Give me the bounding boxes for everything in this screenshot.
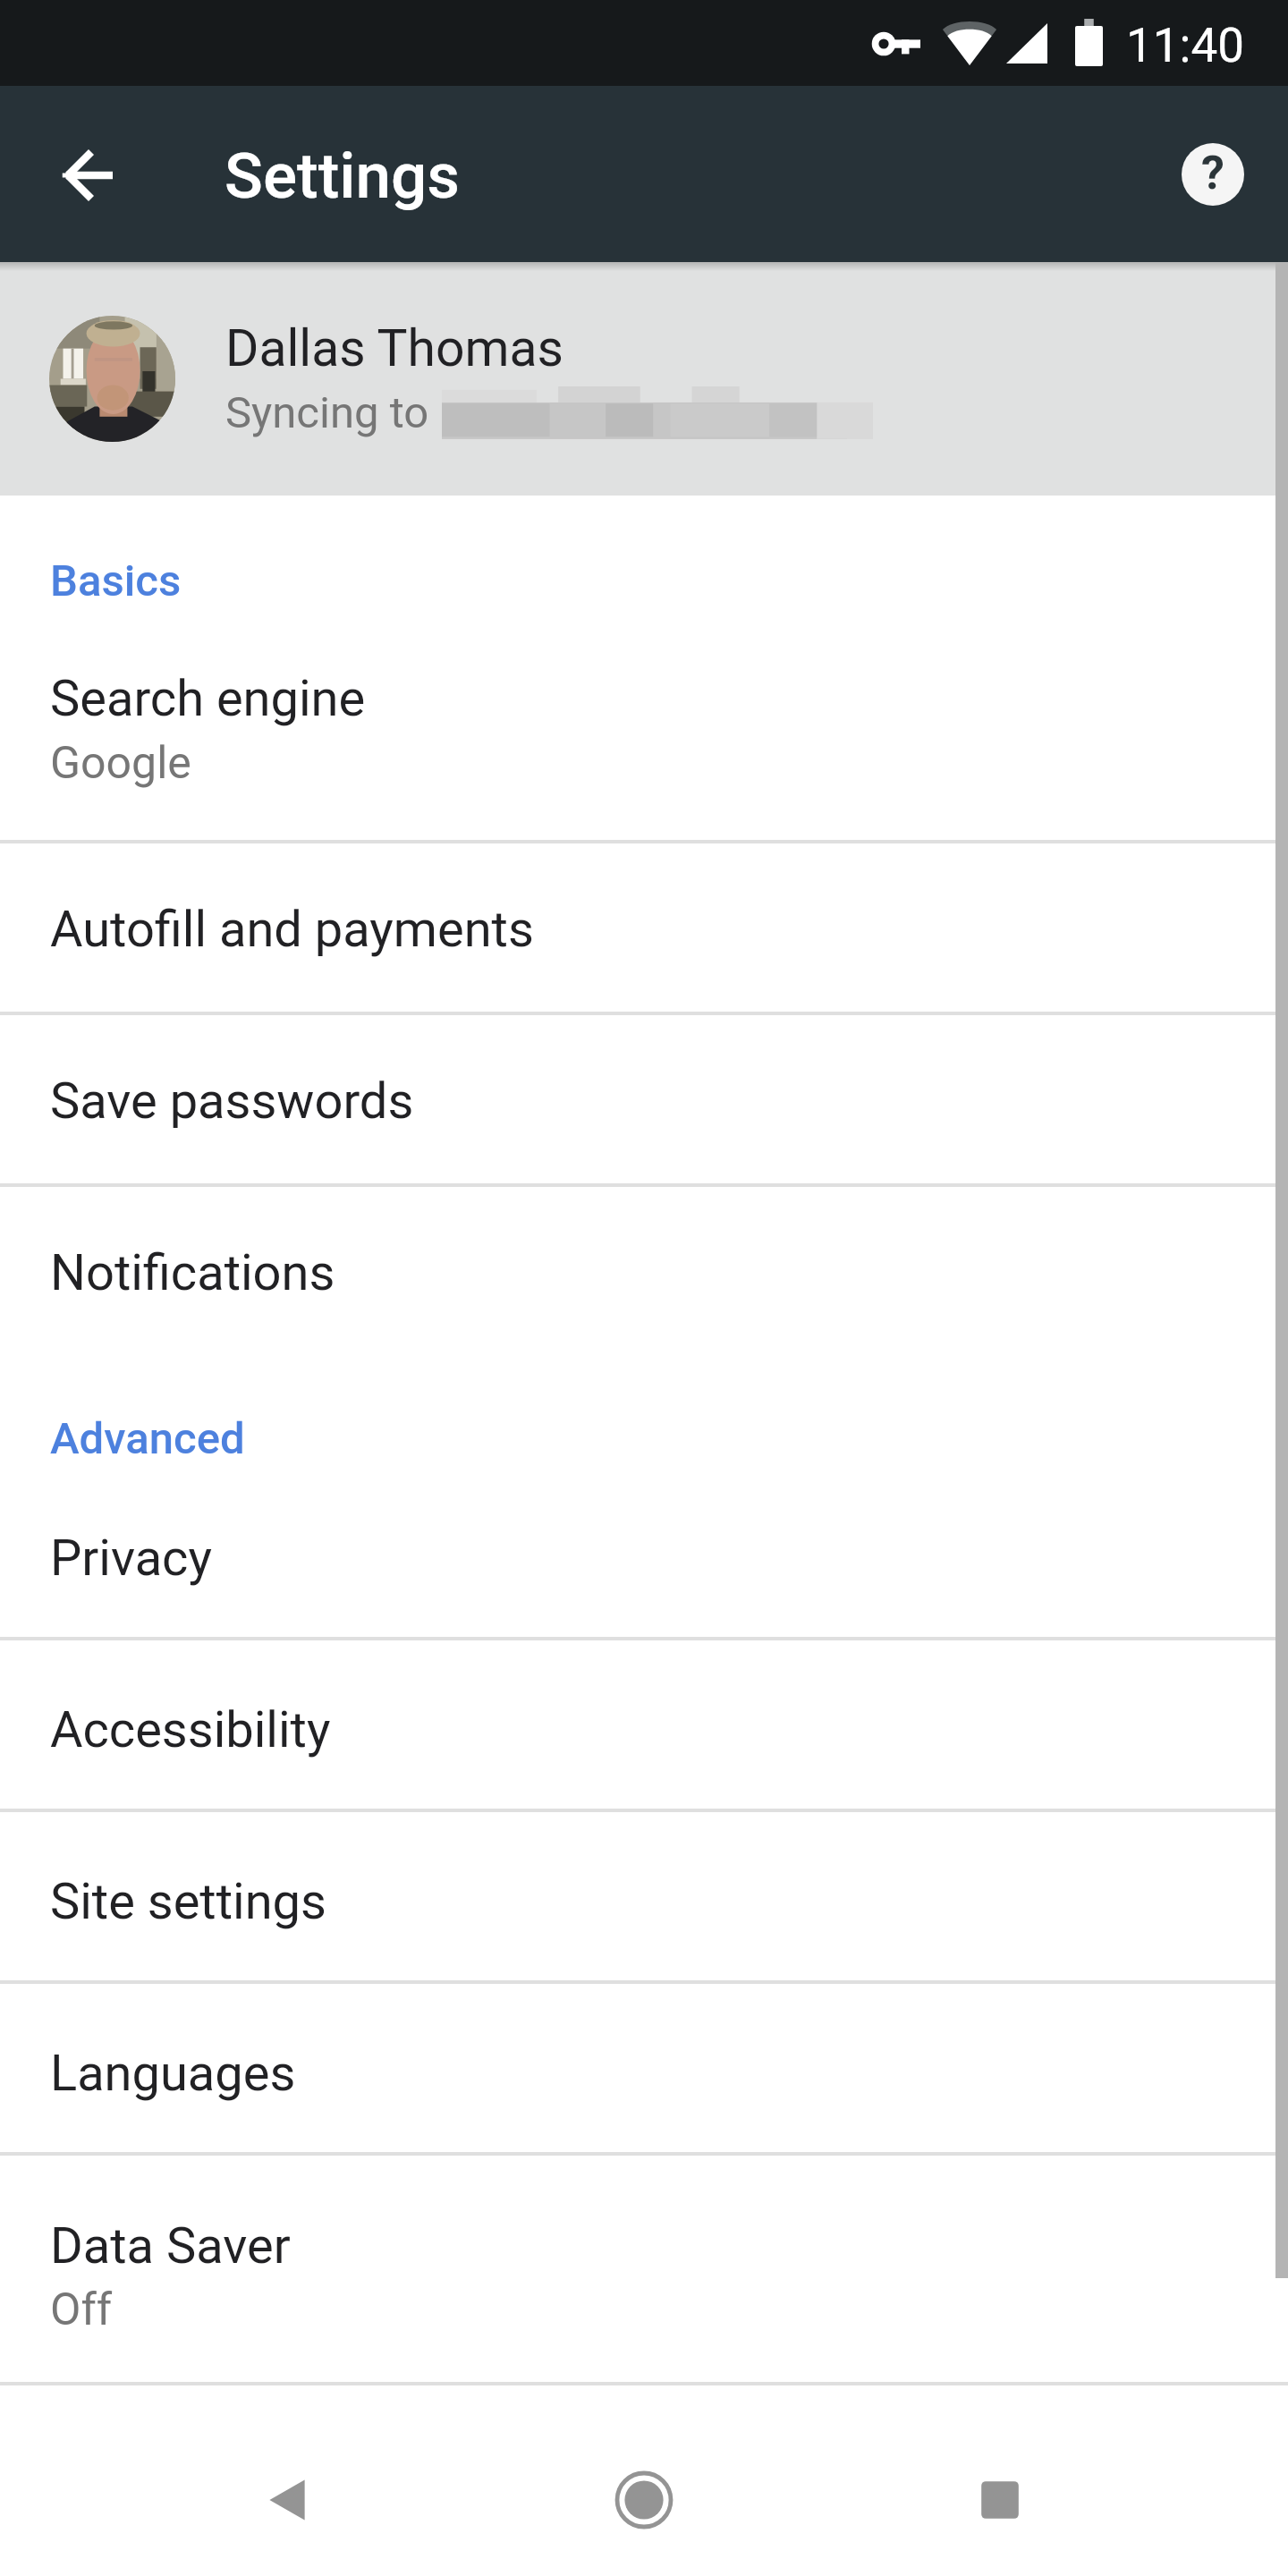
staticText: Dallas Thomas (225, 318, 563, 378)
button[interactable]: Accessibility (0, 1640, 1288, 1809)
staticText: Google (50, 737, 191, 790)
button[interactable]: Notifications (0, 1187, 1288, 1357)
staticText: Data Saver (50, 2216, 291, 2275)
button[interactable]: Home (608, 2464, 680, 2536)
staticText: 11:40 (1126, 18, 1244, 73)
staticText: Languages (50, 2044, 296, 2103)
staticText: ? (1201, 146, 1224, 200)
button[interactable]: Save passwords (0, 1015, 1288, 1183)
staticText: Settings (225, 139, 460, 213)
staticText: Autofill and payments (50, 900, 534, 959)
button[interactable]: Recent apps (964, 2464, 1036, 2536)
staticText: Advanced (50, 1413, 245, 1464)
staticText: Accessibility (50, 1700, 331, 1759)
staticText: Basics (50, 555, 182, 606)
staticText: Search engine (50, 669, 366, 728)
button[interactable]: Autofill and payments (0, 843, 1288, 1012)
staticText: Off (50, 2284, 113, 2336)
staticText: Syncing to (225, 387, 429, 438)
staticText: Privacy (50, 1529, 212, 1588)
staticText: Site settings (50, 1872, 326, 1931)
button[interactable]: Dallas Thomas (0, 262, 1288, 496)
button[interactable]: Help and feedback (1182, 143, 1244, 206)
button[interactable]: Privacy (0, 1467, 1288, 1637)
staticText: Notifications (50, 1243, 335, 1302)
button[interactable]: Site settings (0, 1812, 1288, 1980)
button[interactable]: Navigate up (50, 138, 125, 213)
button[interactable]: Languages (0, 1984, 1288, 2152)
button[interactable]: Search engine (0, 613, 1288, 840)
button[interactable]: Back (251, 2464, 323, 2536)
button[interactable]: Data Saver (0, 2156, 1288, 2382)
staticText: Save passwords (50, 1072, 414, 1131)
